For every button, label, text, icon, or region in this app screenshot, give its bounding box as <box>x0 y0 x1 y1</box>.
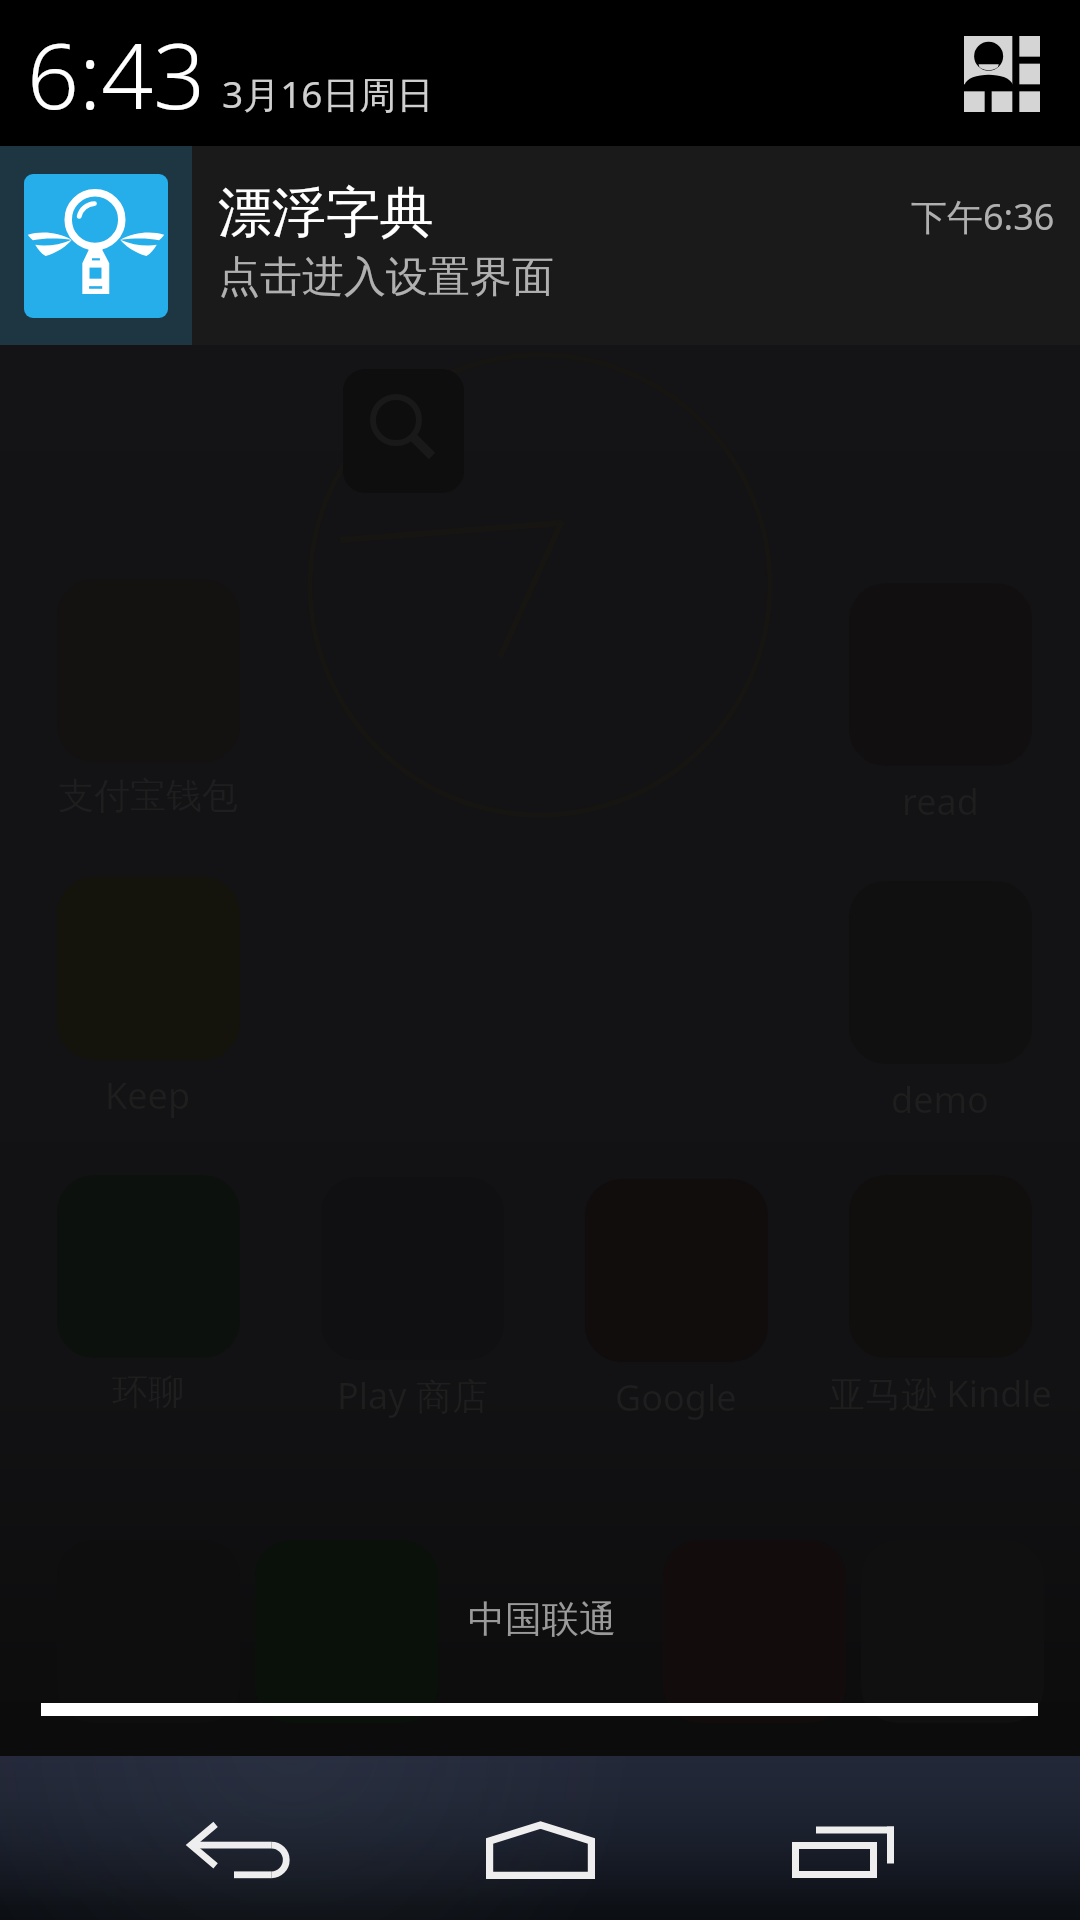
staticText: Keep <box>105 1071 191 1120</box>
button[interactable]: Back <box>0 1756 360 1920</box>
staticText: 下午6:36 <box>911 192 1055 241</box>
staticText: 点击进入设置界面 <box>218 251 554 304</box>
staticText: 支付宝钱包 <box>58 773 238 818</box>
button[interactable]: Recent apps <box>720 1756 1080 1920</box>
staticText: Play 商店 <box>337 1371 488 1420</box>
button[interactable]: Quick settings <box>964 36 1040 112</box>
staticText: 亚马逊 Kindle <box>829 1369 1052 1418</box>
staticText: 6:43 <box>27 12 206 136</box>
staticText: 中国联通 <box>468 1596 616 1643</box>
staticText: demo <box>891 1075 989 1124</box>
staticText: 环聊 <box>112 1369 184 1414</box>
staticText: read <box>902 777 979 826</box>
button[interactable]: Home <box>360 1756 720 1920</box>
staticText: Google <box>615 1373 737 1422</box>
staticText: 漂浮字典 <box>218 179 434 247</box>
staticText: 3月16日周日 <box>222 68 434 119</box>
button[interactable]: 漂浮字典 <box>0 146 1080 345</box>
